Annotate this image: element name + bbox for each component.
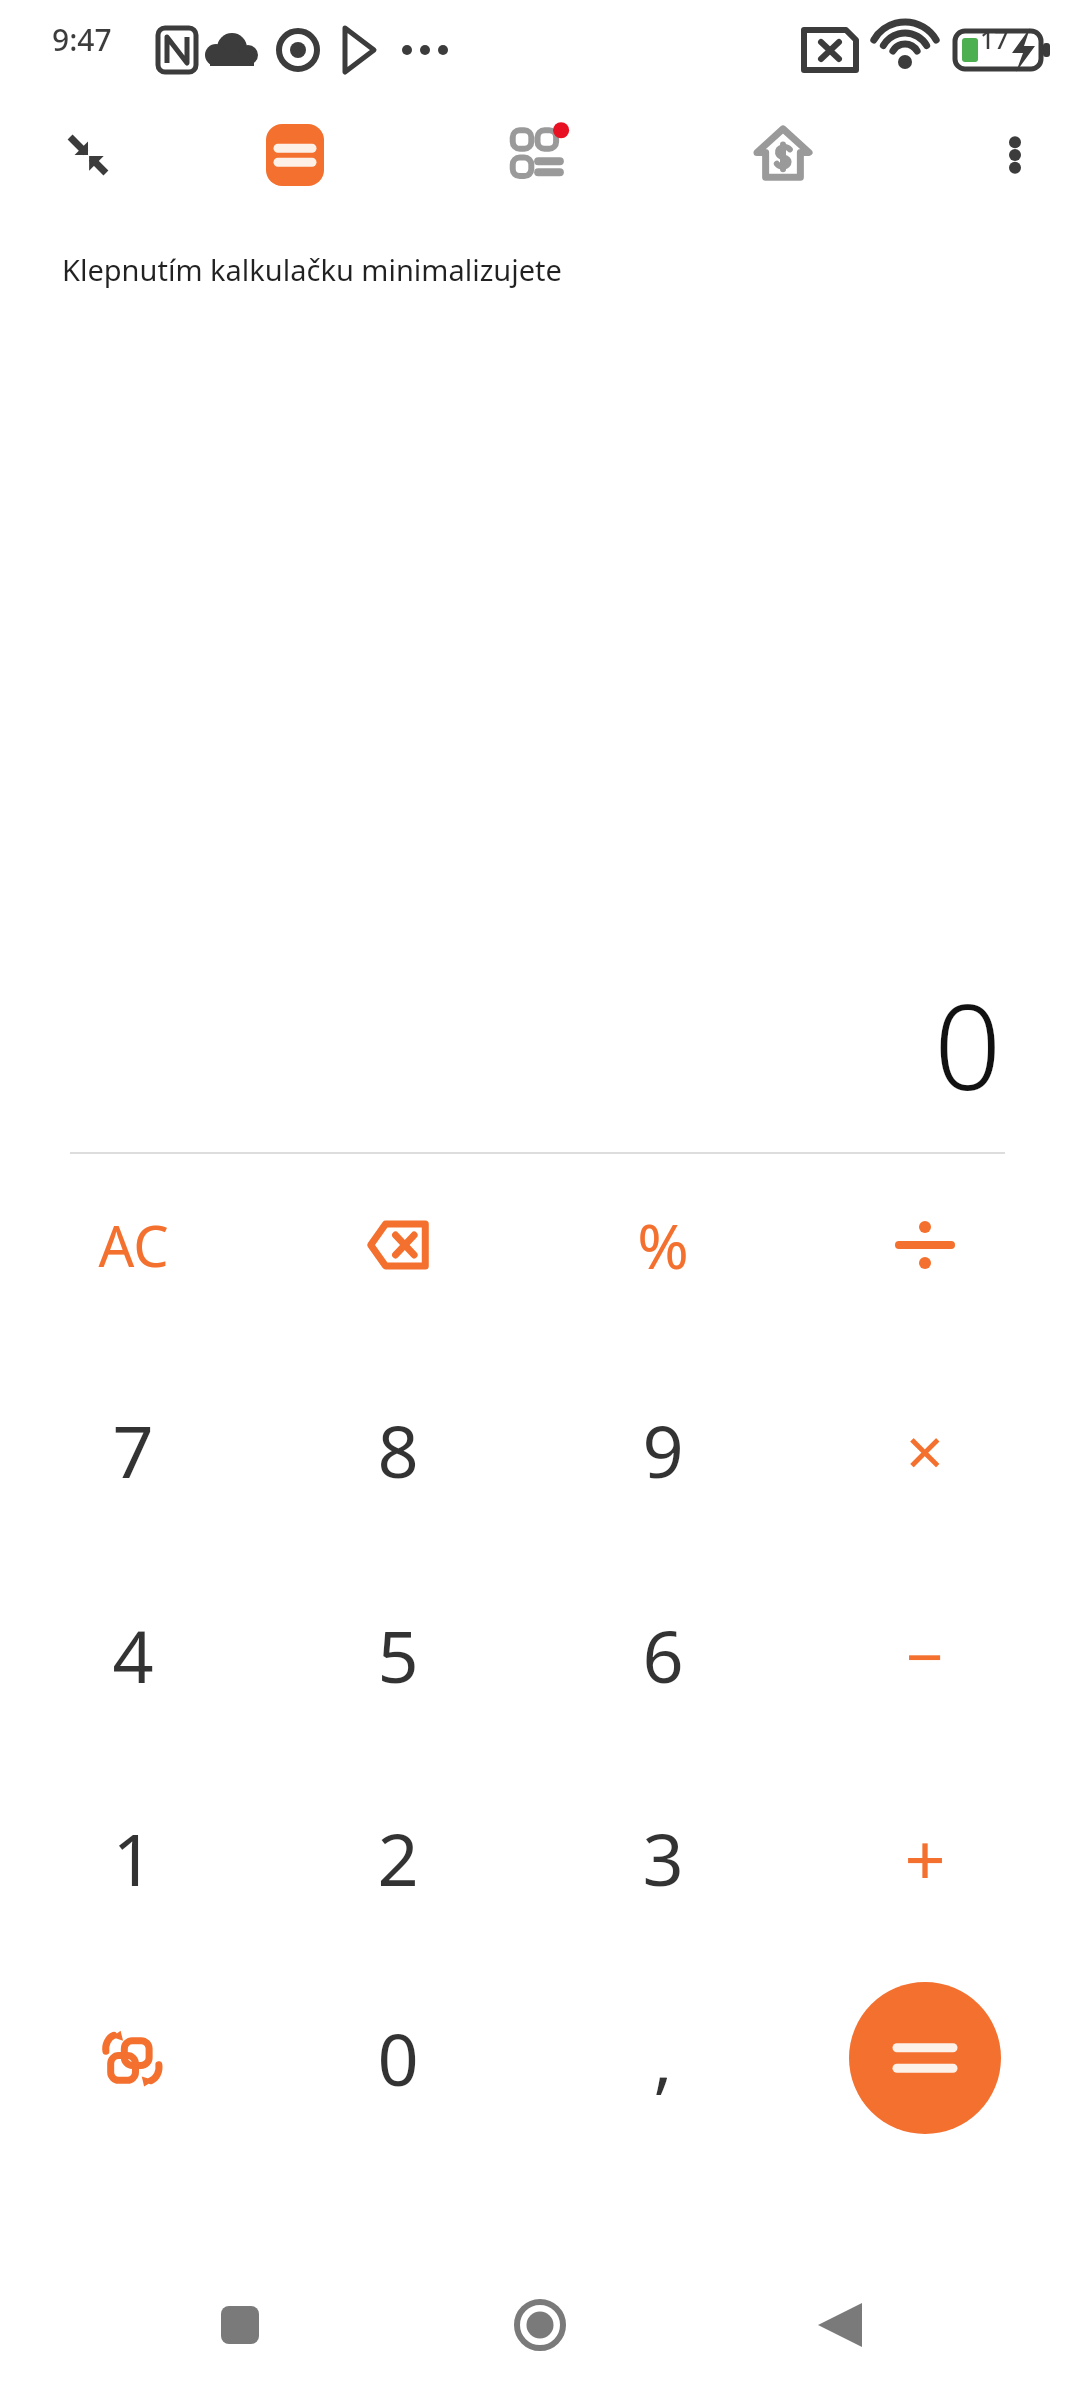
button[interactable]: + [830, 1763, 1020, 1953]
button[interactable]: 0 [303, 1963, 493, 2153]
staticText: + [904, 1809, 946, 1907]
staticText: × [906, 1405, 944, 1495]
button[interactable]: 7 [38, 1355, 228, 1545]
staticText: 2 [377, 1809, 419, 1907]
staticText: 0 [377, 2009, 419, 2107]
staticText: Klepnutím kalkulačku minimalizujete [62, 250, 562, 289]
staticText: 17 [980, 22, 1009, 56]
button[interactable]: More options [970, 110, 1060, 200]
staticText: 3 [642, 1809, 684, 1907]
staticText: % [637, 1203, 689, 1287]
staticText: 5 [377, 1606, 419, 1704]
button[interactable]: Back [780, 2265, 900, 2385]
button[interactable]: AC [38, 1150, 228, 1340]
button[interactable]: Minimize calculator [43, 110, 133, 200]
button[interactable]: 3 [568, 1763, 758, 1953]
button[interactable]: Home [480, 2265, 600, 2385]
staticText: 0 [934, 964, 1002, 1125]
button[interactable]: − [830, 1560, 1020, 1750]
staticText: 4 [112, 1606, 154, 1704]
button[interactable]: Equals [849, 1982, 1001, 2134]
button[interactable]: Apps [495, 110, 585, 200]
button[interactable]: % [568, 1150, 758, 1340]
button[interactable]: 2 [303, 1763, 493, 1953]
staticText: 1 [112, 1809, 154, 1907]
staticText: , [653, 2009, 673, 2107]
button[interactable]: Calculator [250, 110, 340, 200]
button[interactable]: Backspace [303, 1150, 493, 1340]
button[interactable]: 6 [568, 1560, 758, 1750]
staticText: 9:47 [52, 19, 112, 60]
button[interactable]: 9 [568, 1355, 758, 1545]
button[interactable]: × [830, 1355, 1020, 1545]
staticText: 9 [642, 1401, 684, 1499]
staticText: 8 [377, 1401, 419, 1499]
button[interactable]: , [568, 1963, 758, 2153]
button[interactable]: 8 [303, 1355, 493, 1545]
button[interactable]: Unit converter [38, 1963, 228, 2153]
staticText: 7 [112, 1401, 154, 1499]
button[interactable]: 5 [303, 1560, 493, 1750]
staticText: − [906, 1610, 944, 1700]
button[interactable]: 4 [38, 1560, 228, 1750]
button[interactable]: Loan calculator [738, 110, 828, 200]
staticText: AC [98, 1207, 169, 1283]
staticText: 6 [642, 1606, 684, 1704]
button[interactable]: Recent apps [180, 2265, 300, 2385]
button[interactable]: Divide [830, 1150, 1020, 1340]
button[interactable]: Klepnutím kalkulačku minimalizujete [36, 210, 592, 328]
button[interactable]: 1 [38, 1763, 228, 1953]
